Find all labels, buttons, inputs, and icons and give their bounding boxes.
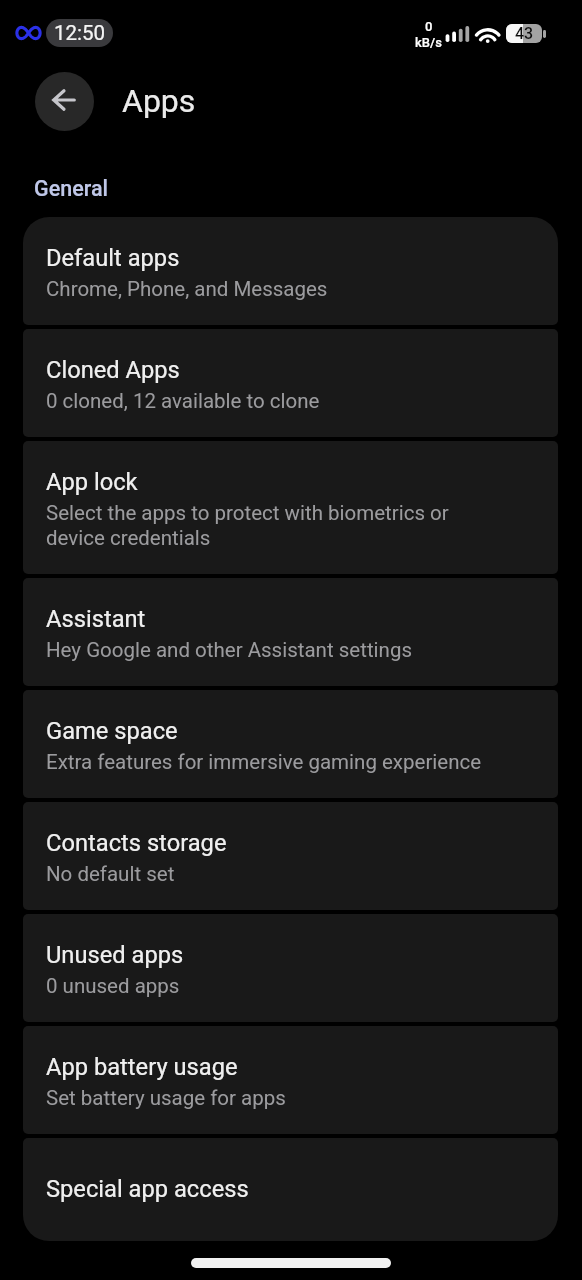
button[interactable]: Game space (23, 690, 558, 798)
button[interactable]: Default apps (23, 217, 558, 325)
staticText: Cloned Apps (46, 357, 180, 384)
staticText: 0 (425, 19, 433, 34)
staticText: General (34, 176, 109, 201)
staticText: Chrome, Phone, and Messages (46, 276, 328, 301)
staticText: 43 (515, 24, 534, 43)
button[interactable]: Unused apps (23, 914, 558, 1022)
staticText: Apps (122, 83, 196, 120)
button[interactable]: Back (35, 72, 94, 131)
staticText: 12:50 (54, 21, 106, 45)
staticText: Default apps (46, 245, 180, 272)
button[interactable]: Assistant (23, 578, 558, 686)
staticText: kB/s (415, 35, 442, 50)
button[interactable]: Contacts storage (23, 802, 558, 910)
staticText: App lock (46, 469, 138, 496)
staticText: Select the apps to protect with biometri… (46, 500, 503, 550)
button[interactable]: Cloned Apps (23, 329, 558, 437)
staticText: Contacts storage (46, 830, 227, 857)
button[interactable]: App battery usage (23, 1026, 558, 1134)
staticText: 0 unused apps (46, 973, 180, 998)
staticText: Unused apps (46, 942, 184, 969)
staticText: Game space (46, 718, 178, 745)
staticText: Special app access (46, 1176, 249, 1203)
staticText: No default set (46, 861, 175, 886)
staticText: Assistant (46, 606, 146, 633)
button[interactable]: Special app access (23, 1138, 558, 1241)
staticText: Extra features for immersive gaming expe… (46, 749, 482, 774)
staticText: App battery usage (46, 1054, 238, 1081)
staticText: 0 cloned, 12 available to clone (46, 388, 320, 413)
staticText: Set battery usage for apps (46, 1085, 286, 1110)
button[interactable]: App lock (23, 441, 558, 574)
staticText: Hey Google and other Assistant settings (46, 637, 412, 662)
